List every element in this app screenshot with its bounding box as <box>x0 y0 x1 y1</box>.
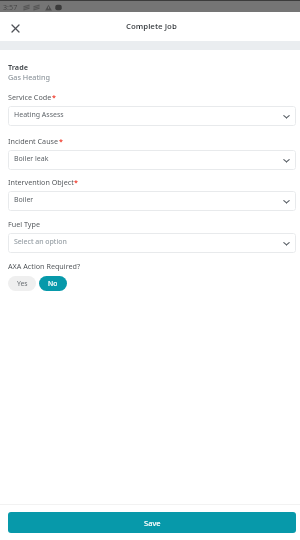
staticText: Yes <box>17 279 28 288</box>
staticText: Select an option <box>14 237 67 247</box>
button[interactable]: Close <box>3 15 27 39</box>
staticText: Incident Cause <box>8 136 59 146</box>
button[interactable]: No <box>39 276 67 291</box>
button[interactable]: Heating Assess <box>8 106 296 126</box>
staticText: Boiler leak <box>14 154 49 164</box>
staticText: 3:57 <box>3 2 18 12</box>
staticText: Heating Assess <box>14 110 64 120</box>
staticText: Fuel Type <box>8 219 40 229</box>
staticText: Complete Job <box>126 21 177 32</box>
staticText: No <box>48 279 58 288</box>
button[interactable]: Boiler leak <box>8 150 296 170</box>
staticText: Trade <box>8 62 28 72</box>
staticText: * <box>52 92 56 102</box>
staticText: * <box>59 136 63 146</box>
staticText: Boiler <box>14 195 34 205</box>
staticText: Save <box>144 518 161 528</box>
button[interactable]: Boiler <box>8 191 296 211</box>
staticText: Gas Heating <box>8 72 50 82</box>
button[interactable]: Yes <box>8 276 36 291</box>
button[interactable]: Save <box>8 512 296 533</box>
button[interactable]: Select an option <box>8 233 296 253</box>
staticText: Intervention Object <box>8 177 74 187</box>
staticText: Service Code <box>8 92 52 102</box>
staticText: AXA Action Required? <box>8 261 81 271</box>
staticText: * <box>74 177 78 187</box>
